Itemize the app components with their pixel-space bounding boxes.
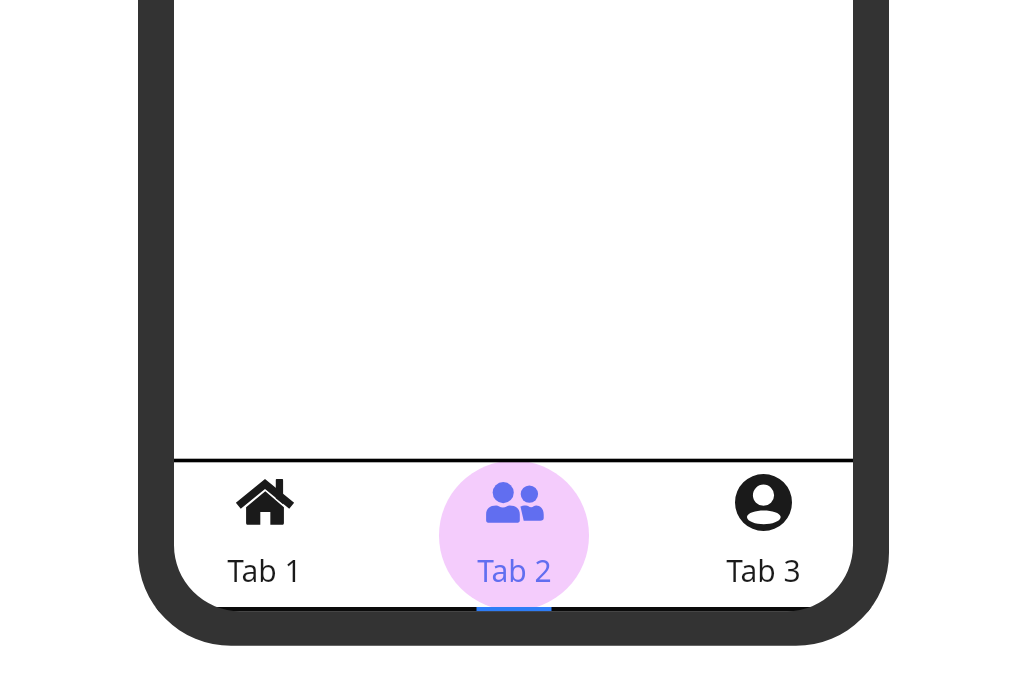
button[interactable]: People (390, 462, 639, 607)
other: Account (735, 474, 792, 531)
staticText: Tab 3 (726, 550, 801, 591)
other: People (486, 482, 544, 523)
button[interactable]: Account (639, 462, 888, 607)
other: Home (236, 479, 294, 525)
staticText: Tab 2 (477, 550, 552, 591)
button[interactable]: Home (140, 462, 389, 607)
staticText: Tab 1 (227, 550, 302, 591)
